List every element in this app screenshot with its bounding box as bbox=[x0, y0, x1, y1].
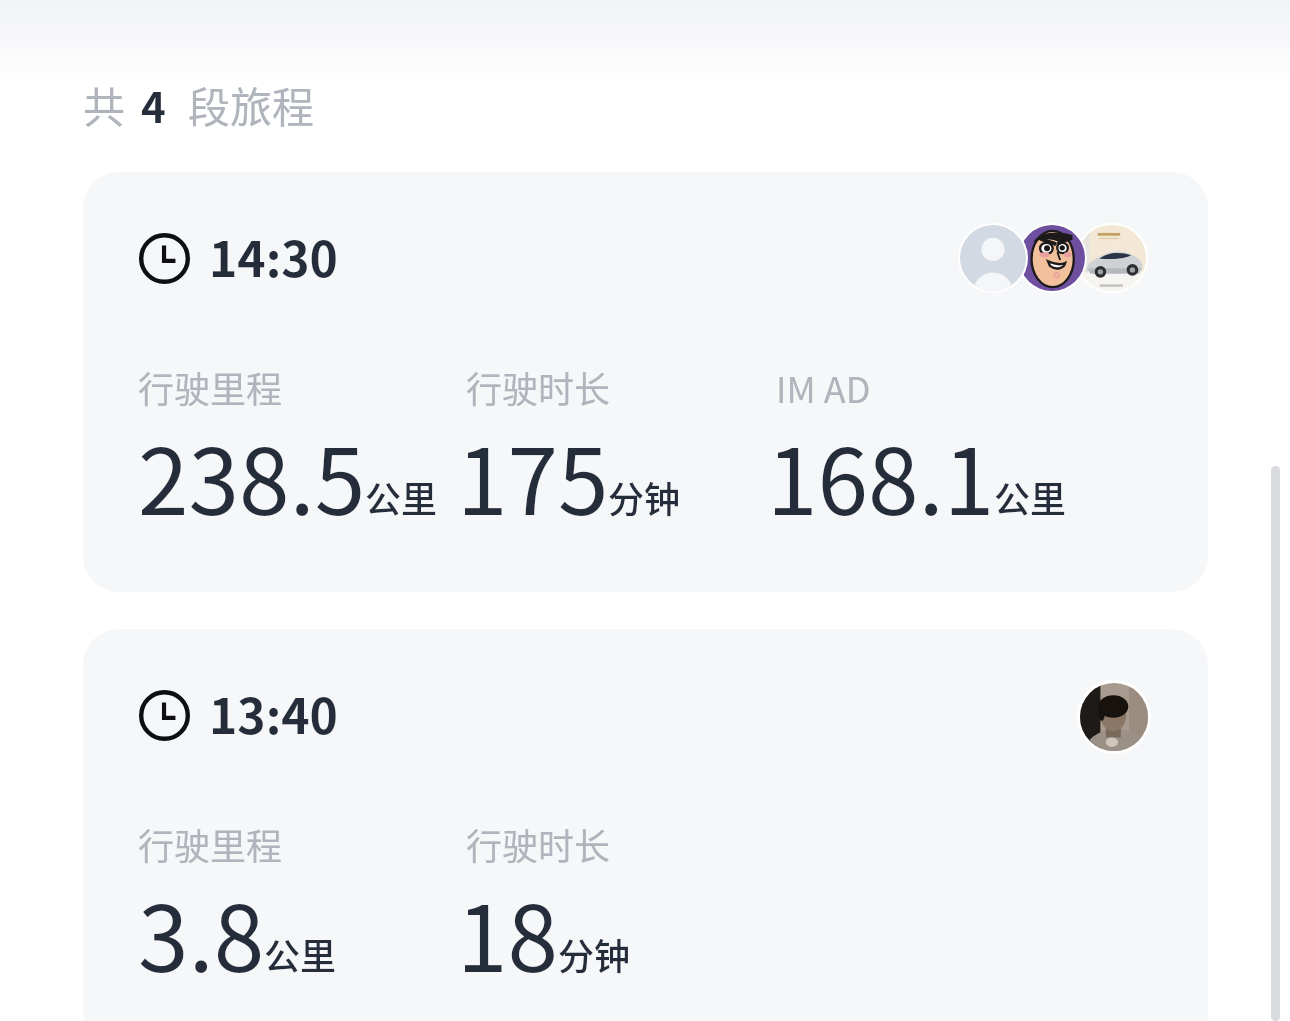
other: Start time bbox=[139, 233, 190, 284]
staticText: 行驶时长 bbox=[466, 361, 611, 413]
button[interactable]: Trip participants bbox=[958, 223, 1148, 293]
staticText: 公里 bbox=[264, 928, 337, 980]
staticText: 13:40 bbox=[209, 678, 338, 740]
button[interactable]: Start time bbox=[139, 227, 338, 289]
staticText: 14:30 bbox=[209, 221, 338, 283]
staticText: 分钟 bbox=[558, 928, 631, 980]
button[interactable]: Start time bbox=[83, 629, 1208, 1021]
staticText: 公里 bbox=[365, 471, 438, 523]
button[interactable]: 行驶时长 bbox=[466, 818, 641, 950]
button[interactable]: 行驶时长 bbox=[466, 361, 691, 493]
staticText: 段旅程 bbox=[188, 74, 315, 135]
other: Start time bbox=[139, 690, 190, 741]
button[interactable]: Start time bbox=[139, 684, 338, 746]
staticText: 238.5 bbox=[138, 409, 366, 541]
staticText: 18 bbox=[457, 866, 559, 998]
staticText: 168.1 bbox=[767, 409, 995, 541]
button[interactable]: 行驶里程 bbox=[138, 818, 338, 950]
staticText: 公里 bbox=[994, 471, 1067, 523]
button[interactable]: IM AD bbox=[776, 361, 1077, 493]
staticText: 共 bbox=[83, 74, 126, 135]
button[interactable]: 行驶里程 bbox=[138, 361, 439, 493]
staticText: 4 bbox=[141, 74, 166, 135]
staticText: 175 bbox=[457, 409, 609, 541]
staticText: 行驶里程 bbox=[138, 818, 283, 870]
staticText: 行驶时长 bbox=[466, 818, 611, 870]
staticText: 3.8 bbox=[138, 866, 265, 998]
button[interactable]: Driver avatar bbox=[1080, 683, 1148, 751]
staticText: IM AD bbox=[776, 361, 871, 413]
button[interactable]: Start time bbox=[83, 172, 1208, 592]
staticText: 行驶里程 bbox=[138, 361, 283, 413]
staticText: 分钟 bbox=[608, 471, 681, 523]
